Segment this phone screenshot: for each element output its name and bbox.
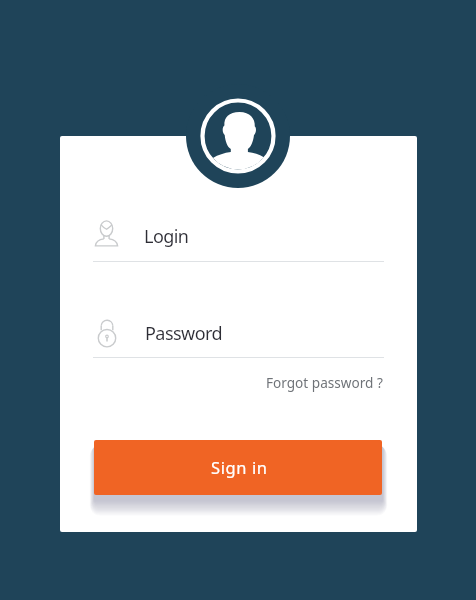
staticText: Sign in <box>211 456 268 478</box>
button[interactable] <box>93 215 384 261</box>
staticText: Password <box>145 321 223 345</box>
button[interactable]: Sign in <box>94 440 382 495</box>
button[interactable]: Forgot password ? <box>266 370 383 394</box>
staticText: Login <box>144 224 189 248</box>
button[interactable] <box>93 311 384 357</box>
other: Profile avatar <box>186 84 290 188</box>
staticText: Forgot password ? <box>266 373 383 392</box>
